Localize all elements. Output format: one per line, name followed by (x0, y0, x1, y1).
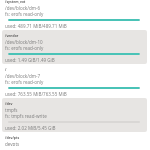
staticText: fs: erofs read-only (5, 11, 44, 17)
button[interactable]: / (2, 64, 147, 98)
staticText: / (5, 67, 7, 72)
staticText: /vendor (5, 33, 19, 38)
staticText: fs: erofs read-only (5, 79, 44, 85)
button[interactable]: /dev/pts (2, 132, 147, 146)
staticText: /dev/pts (5, 135, 20, 140)
staticText: /system_ext (5, 0, 26, 4)
staticText: used: 763.55 MiB/763.55 MiB (5, 91, 67, 97)
button[interactable]: /dev (2, 98, 147, 132)
staticText: /dev (5, 101, 13, 106)
staticText: used: 1.49 GiB/1.49 GiB (5, 57, 55, 63)
staticText: used: 489.71 MiB/489.71 MiB (5, 23, 67, 29)
staticText: fs: tmpfs read-write (5, 113, 47, 119)
button[interactable]: /vendor (2, 30, 147, 64)
staticText: /dev/block/dm-10 (5, 39, 43, 45)
staticText: tmpfs (5, 107, 18, 113)
staticText: fs: erofs read-only (5, 45, 44, 51)
staticText: devpts (5, 141, 20, 146)
staticText: /dev/block/dm-7 (5, 73, 41, 79)
staticText: /dev/block/dm-6 (5, 5, 41, 11)
staticText: used: 2.02 MiB/5.45 GiB (5, 125, 56, 131)
button[interactable]: /system_ext (2, 0, 147, 30)
